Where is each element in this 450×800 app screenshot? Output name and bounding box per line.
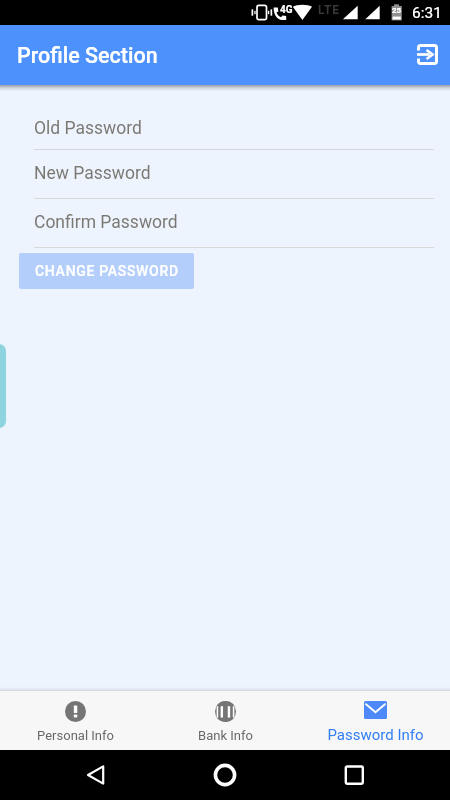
staticText: Bank Info [198, 728, 253, 743]
staticText: Confirm Password [34, 212, 178, 233]
staticText: Profile Section [17, 43, 158, 68]
button[interactable]: Confirm Password [0, 199, 450, 248]
staticText: Old Password [34, 118, 142, 139]
button[interactable]: Bank Info [150, 691, 300, 750]
button[interactable]: Old Password [0, 108, 450, 150]
button[interactable]: Password Info [300, 691, 450, 750]
staticText: 4G [280, 4, 293, 16]
staticText: Personal Info [37, 728, 114, 743]
staticText: 6:31 [412, 4, 442, 22]
staticText: Password Info [327, 726, 424, 744]
button[interactable]: Personal Info [0, 691, 150, 750]
staticText: LTE [318, 3, 340, 17]
staticText: CHANGE PASSWORD [35, 263, 179, 279]
button[interactable]: CHANGE PASSWORD [19, 253, 194, 289]
staticText: New Password [34, 163, 151, 184]
button[interactable]: New Password [0, 150, 450, 199]
button[interactable]: Log out [405, 33, 449, 77]
staticText: 25 [392, 6, 402, 15]
